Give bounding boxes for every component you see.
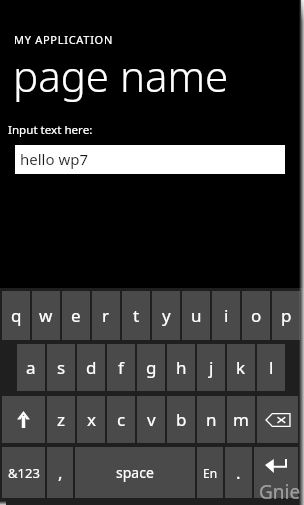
staticText: y: [162, 304, 171, 327]
staticText: r: [102, 304, 110, 327]
button[interactable]: o: [242, 291, 270, 340]
button[interactable]: f: [107, 344, 135, 391]
button[interactable]: a: [17, 344, 45, 391]
staticText: s: [57, 356, 66, 379]
button[interactable]: y: [152, 291, 180, 340]
button[interactable]: l: [257, 344, 285, 391]
staticText: ,: [58, 461, 63, 484]
button[interactable]: e: [62, 291, 90, 340]
staticText: c: [117, 408, 126, 431]
staticText: u: [191, 304, 202, 327]
button[interactable]: p: [272, 291, 300, 340]
button[interactable]: space: [75, 447, 195, 498]
staticText: MY APPLICATION: [14, 32, 113, 47]
button[interactable]: m: [227, 396, 255, 443]
button[interactable]: d: [77, 344, 105, 391]
button[interactable]: Backspace: [257, 396, 298, 443]
staticText: v: [147, 408, 156, 431]
staticText: h: [176, 356, 187, 379]
staticText: q: [11, 304, 22, 327]
button[interactable]: g: [137, 344, 165, 391]
button[interactable]: z: [47, 396, 75, 443]
button[interactable]: Enter: [254, 447, 298, 498]
button[interactable]: k: [227, 344, 255, 391]
button[interactable]: s: [47, 344, 75, 391]
button[interactable]: u: [182, 291, 210, 340]
staticText: p: [281, 304, 292, 327]
button[interactable]: &123: [2, 447, 45, 498]
staticText: En: [203, 465, 218, 481]
button[interactable]: q: [2, 291, 30, 340]
staticText: w: [39, 304, 53, 327]
button[interactable]: b: [167, 396, 195, 443]
staticText: e: [71, 304, 81, 327]
staticText: t: [133, 304, 140, 327]
staticText: j: [209, 356, 214, 379]
staticText: &123: [8, 464, 40, 482]
staticText: z: [57, 408, 65, 431]
button[interactable]: r: [92, 291, 120, 340]
button[interactable]: t: [122, 291, 150, 340]
button[interactable]: n: [197, 396, 225, 443]
staticText: l: [269, 356, 274, 379]
staticText: d: [86, 356, 97, 379]
button[interactable]: h: [167, 344, 195, 391]
button[interactable]: .: [225, 447, 252, 498]
staticText: x: [87, 408, 96, 431]
staticText: Gnie: [259, 479, 301, 505]
button[interactable]: c: [107, 396, 135, 443]
button[interactable]: Shift: [2, 396, 45, 443]
staticText: f: [118, 356, 124, 379]
button[interactable]: i: [212, 291, 240, 340]
button[interactable]: j: [197, 344, 225, 391]
staticText: Input text here:: [8, 122, 93, 138]
staticText: .: [236, 461, 241, 484]
staticText: hello wp7: [20, 149, 89, 169]
staticText: m: [233, 408, 249, 431]
button[interactable]: ,: [47, 447, 73, 498]
staticText: i: [224, 304, 229, 327]
button[interactable]: v: [137, 396, 165, 443]
staticText: page name: [13, 47, 229, 104]
staticText: o: [251, 304, 262, 327]
staticText: b: [176, 408, 187, 431]
button[interactable]: hello wp7: [15, 145, 285, 174]
button[interactable]: En: [197, 447, 223, 498]
staticText: a: [26, 356, 36, 379]
staticText: g: [146, 356, 157, 379]
staticText: k: [236, 356, 246, 379]
button[interactable]: w: [32, 291, 60, 340]
staticText: space: [116, 463, 154, 482]
button[interactable]: x: [77, 396, 105, 443]
staticText: n: [206, 408, 217, 431]
